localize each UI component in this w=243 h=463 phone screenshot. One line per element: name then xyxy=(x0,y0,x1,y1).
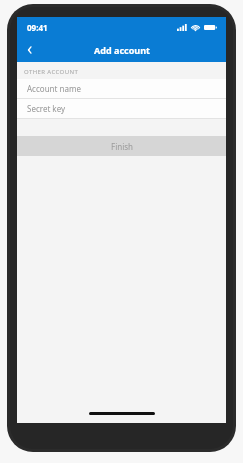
button[interactable]: Secret key xyxy=(17,99,226,118)
staticText: Add account xyxy=(94,44,150,56)
staticText: Finish xyxy=(111,141,133,152)
staticText: Secret key xyxy=(27,103,66,114)
staticText: 09:41 xyxy=(27,22,48,33)
staticText: OTHER ACCOUNT xyxy=(24,68,79,76)
staticText: Account name xyxy=(27,83,81,94)
button[interactable]: Account name xyxy=(17,79,226,98)
button[interactable]: Back xyxy=(17,37,43,62)
button[interactable]: Finish xyxy=(17,136,226,156)
